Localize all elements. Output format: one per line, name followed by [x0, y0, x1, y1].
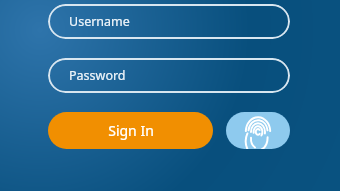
staticText: Sign In	[108, 121, 154, 140]
button[interactable]: Password	[48, 58, 290, 93]
button[interactable]: Sign in with fingerprint	[226, 112, 290, 149]
button[interactable]: Username	[48, 4, 290, 39]
staticText: Password	[69, 67, 126, 84]
button[interactable]: Sign In	[48, 112, 213, 149]
staticText: Username	[69, 13, 130, 30]
